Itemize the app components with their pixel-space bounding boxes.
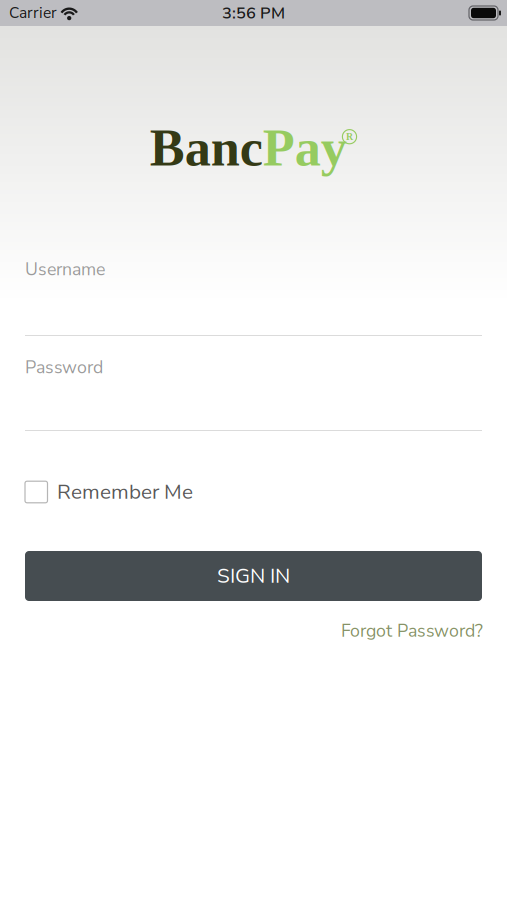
staticText: Password <box>25 355 103 380</box>
staticText: SIGN IN <box>217 562 290 590</box>
staticText: Forgot Password? <box>341 619 483 643</box>
button[interactable]: Forgot Password? <box>0 621 507 641</box>
staticText: Username <box>25 257 105 282</box>
staticText: 3:56 PM <box>222 2 285 24</box>
button[interactable]: Remember Me <box>0 478 507 506</box>
staticText: R <box>346 131 353 142</box>
staticText: Remember Me <box>57 478 193 506</box>
staticText: Pay <box>263 119 347 177</box>
staticText: Carrier <box>9 2 57 23</box>
button[interactable]: SIGN IN <box>0 551 507 601</box>
staticText: Banc <box>150 119 263 177</box>
